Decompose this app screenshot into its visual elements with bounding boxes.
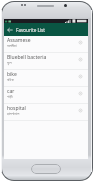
button[interactable]: car	[4, 87, 88, 103]
button[interactable]: Play pronunciation	[74, 104, 87, 117]
staticText: অসমীয়া	[7, 44, 17, 48]
button[interactable]: Play pronunciation	[74, 70, 87, 83]
staticText: hospital	[7, 105, 26, 112]
button[interactable]: Home	[31, 164, 61, 174]
button[interactable]: bike	[4, 70, 88, 86]
staticText: Favourite List	[16, 27, 45, 33]
staticText: গাড়ী	[7, 95, 13, 99]
staticText: বাইক	[7, 78, 14, 82]
staticText: হাসপাতাল	[7, 112, 20, 116]
staticText: bike	[7, 71, 17, 78]
button[interactable]: Play pronunciation	[74, 36, 87, 49]
button[interactable]: Play pronunciation	[74, 87, 87, 100]
button[interactable]: Back	[4, 23, 16, 36]
staticText: Bluebell bacteria	[7, 54, 47, 61]
button[interactable]: hospital	[4, 104, 88, 120]
staticText: ফুল	[7, 61, 12, 65]
button[interactable]: Play pronunciation	[74, 53, 87, 66]
staticText: car	[7, 88, 15, 95]
button[interactable]: Assamese	[4, 36, 88, 52]
staticText: Assamese	[7, 37, 31, 44]
button[interactable]: Bluebell bacteria	[4, 53, 88, 69]
